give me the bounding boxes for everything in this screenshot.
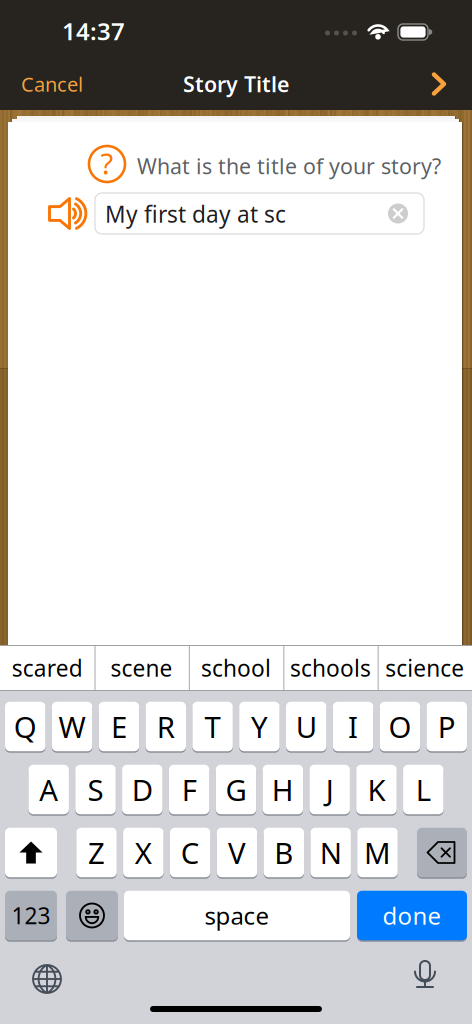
staticText: K (367, 770, 385, 809)
staticText: T (205, 707, 221, 746)
button[interactable]: T (192, 701, 233, 752)
button[interactable]: A (28, 764, 69, 815)
staticText: space (204, 900, 269, 931)
staticText: C (181, 833, 200, 872)
button[interactable]: Next (409, 58, 469, 110)
button[interactable]: D (122, 764, 163, 815)
staticText: D (132, 770, 153, 809)
button[interactable]: Next keyboard (32, 964, 62, 994)
button[interactable]: M (357, 827, 398, 878)
button[interactable]: K (356, 764, 397, 815)
button[interactable]: I (333, 701, 373, 752)
staticText: Y (251, 707, 268, 746)
button[interactable]: P (426, 701, 467, 752)
staticText: What is the title of your story? (137, 152, 441, 180)
button[interactable]: Y (239, 701, 280, 752)
button[interactable]: Emoji (66, 890, 118, 941)
staticText: school (201, 653, 271, 683)
button[interactable]: U (286, 701, 326, 752)
staticText: X (135, 833, 152, 872)
button[interactable]: V (217, 827, 257, 878)
staticText: Story Title (183, 70, 289, 98)
staticText: A (39, 770, 58, 809)
button[interactable]: Dictation (411, 959, 439, 1003)
staticText: scared (12, 653, 83, 683)
button[interactable]: science (378, 645, 472, 691)
button[interactable]: Delete (417, 827, 467, 878)
button[interactable]: Shift (5, 827, 57, 878)
button[interactable]: E (99, 701, 139, 752)
button[interactable]: J (309, 764, 350, 815)
staticText: J (326, 770, 334, 809)
button[interactable]: Clear text (388, 203, 408, 223)
staticText: I (348, 707, 358, 746)
button[interactable]: W (52, 701, 92, 752)
staticText: Cancel (21, 71, 83, 97)
button[interactable]: school (189, 645, 283, 691)
button[interactable]: C (170, 827, 210, 878)
staticText: science (385, 653, 464, 683)
staticText: E (111, 707, 127, 746)
staticText: U (296, 707, 317, 746)
staticText: 123 (11, 900, 50, 930)
staticText: Z (88, 833, 105, 872)
button[interactable]: G (216, 764, 256, 815)
staticText: Q (14, 707, 37, 746)
staticText: S (87, 770, 103, 809)
button[interactable]: S (75, 764, 116, 815)
button[interactable]: F (169, 764, 209, 815)
button[interactable]: R (145, 701, 186, 752)
staticText: W (59, 707, 86, 746)
staticText: 14:37 (62, 15, 125, 47)
staticText: V (228, 833, 246, 872)
staticText: R (157, 707, 175, 746)
button[interactable]: space (124, 890, 350, 941)
button[interactable]: H (263, 764, 303, 815)
staticText: H (272, 770, 294, 809)
staticText: scene (111, 653, 173, 683)
button[interactable]: X (123, 827, 164, 878)
staticText: M (364, 833, 391, 872)
staticText: G (225, 770, 246, 809)
button[interactable]: Cancel (6, 58, 106, 110)
staticText: P (438, 707, 456, 746)
button[interactable]: 123 (5, 890, 57, 941)
staticText: My first day at sc (105, 199, 286, 229)
staticText: F (182, 770, 197, 809)
button[interactable]: done (357, 890, 467, 941)
staticText: schools (290, 653, 371, 683)
button[interactable]: B (264, 827, 304, 878)
button[interactable]: O (380, 701, 420, 752)
button[interactable]: L (403, 764, 444, 815)
button[interactable]: Z (76, 827, 117, 878)
staticText: ? (100, 143, 113, 182)
button[interactable]: Q (5, 701, 45, 752)
button[interactable]: scene (94, 645, 189, 691)
staticText: N (320, 833, 342, 872)
staticText: B (274, 833, 293, 872)
button[interactable]: N (310, 827, 351, 878)
button[interactable]: schools (283, 645, 378, 691)
staticText: L (416, 770, 431, 809)
staticText: O (388, 707, 411, 746)
staticText: done (382, 900, 441, 931)
button[interactable]: scared (0, 645, 94, 691)
